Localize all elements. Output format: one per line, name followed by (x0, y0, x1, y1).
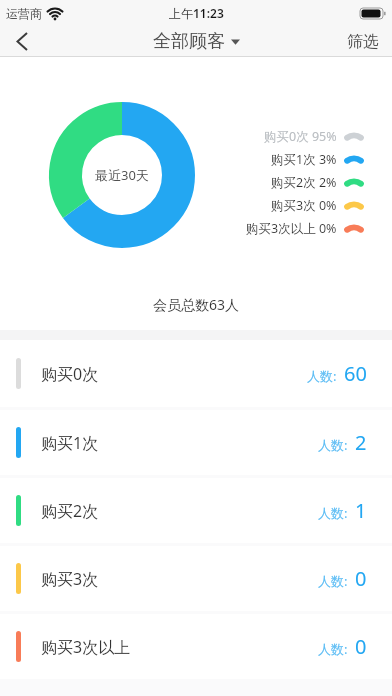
staticText: 60 (344, 360, 367, 387)
staticText: 人数: (318, 640, 348, 658)
staticText: 购买0次 (41, 363, 99, 385)
staticText: 人数: (307, 367, 337, 385)
staticText: 上午11:23 (169, 5, 224, 21)
staticText: 运营商 (6, 6, 42, 21)
staticText: 购买0次 95% (264, 128, 337, 145)
staticText: 1 (355, 497, 367, 524)
staticText: 购买3次 (41, 568, 99, 590)
button[interactable]: 购买2次 (0, 478, 392, 543)
staticText: 0 (355, 565, 367, 592)
button[interactable]: 筛选 (347, 32, 392, 52)
staticText: 购买3次以上 (41, 636, 131, 658)
staticText: 购买2次 2% (271, 174, 337, 191)
staticText: 人数: (318, 504, 348, 522)
button[interactable]: 购买3次 (0, 546, 392, 611)
staticText: 2 (355, 429, 367, 456)
staticText: 购买1次 3% (271, 151, 337, 168)
staticText: 筛选 (347, 32, 379, 52)
staticText: 人数: (318, 572, 348, 590)
button[interactable]: 购买0次 (0, 340, 392, 407)
staticText: 购买3次以上 0% (246, 220, 337, 237)
staticText: 购买2次 (41, 500, 99, 522)
button[interactable]: 购买1次 (0, 410, 392, 475)
staticText: 购买3次 0% (271, 197, 337, 214)
button[interactable]: 全部顾客 (153, 30, 240, 53)
staticText: 人数: (318, 436, 348, 454)
staticText: 最近30天 (95, 166, 149, 184)
button[interactable]: 购买3次以上 (0, 614, 392, 679)
button[interactable] (8, 26, 36, 57)
staticText: 全部顾客 (153, 30, 225, 53)
staticText: 购买1次 (41, 432, 99, 454)
staticText: 0 (355, 633, 367, 660)
staticText: 会员总数63人 (153, 295, 240, 314)
